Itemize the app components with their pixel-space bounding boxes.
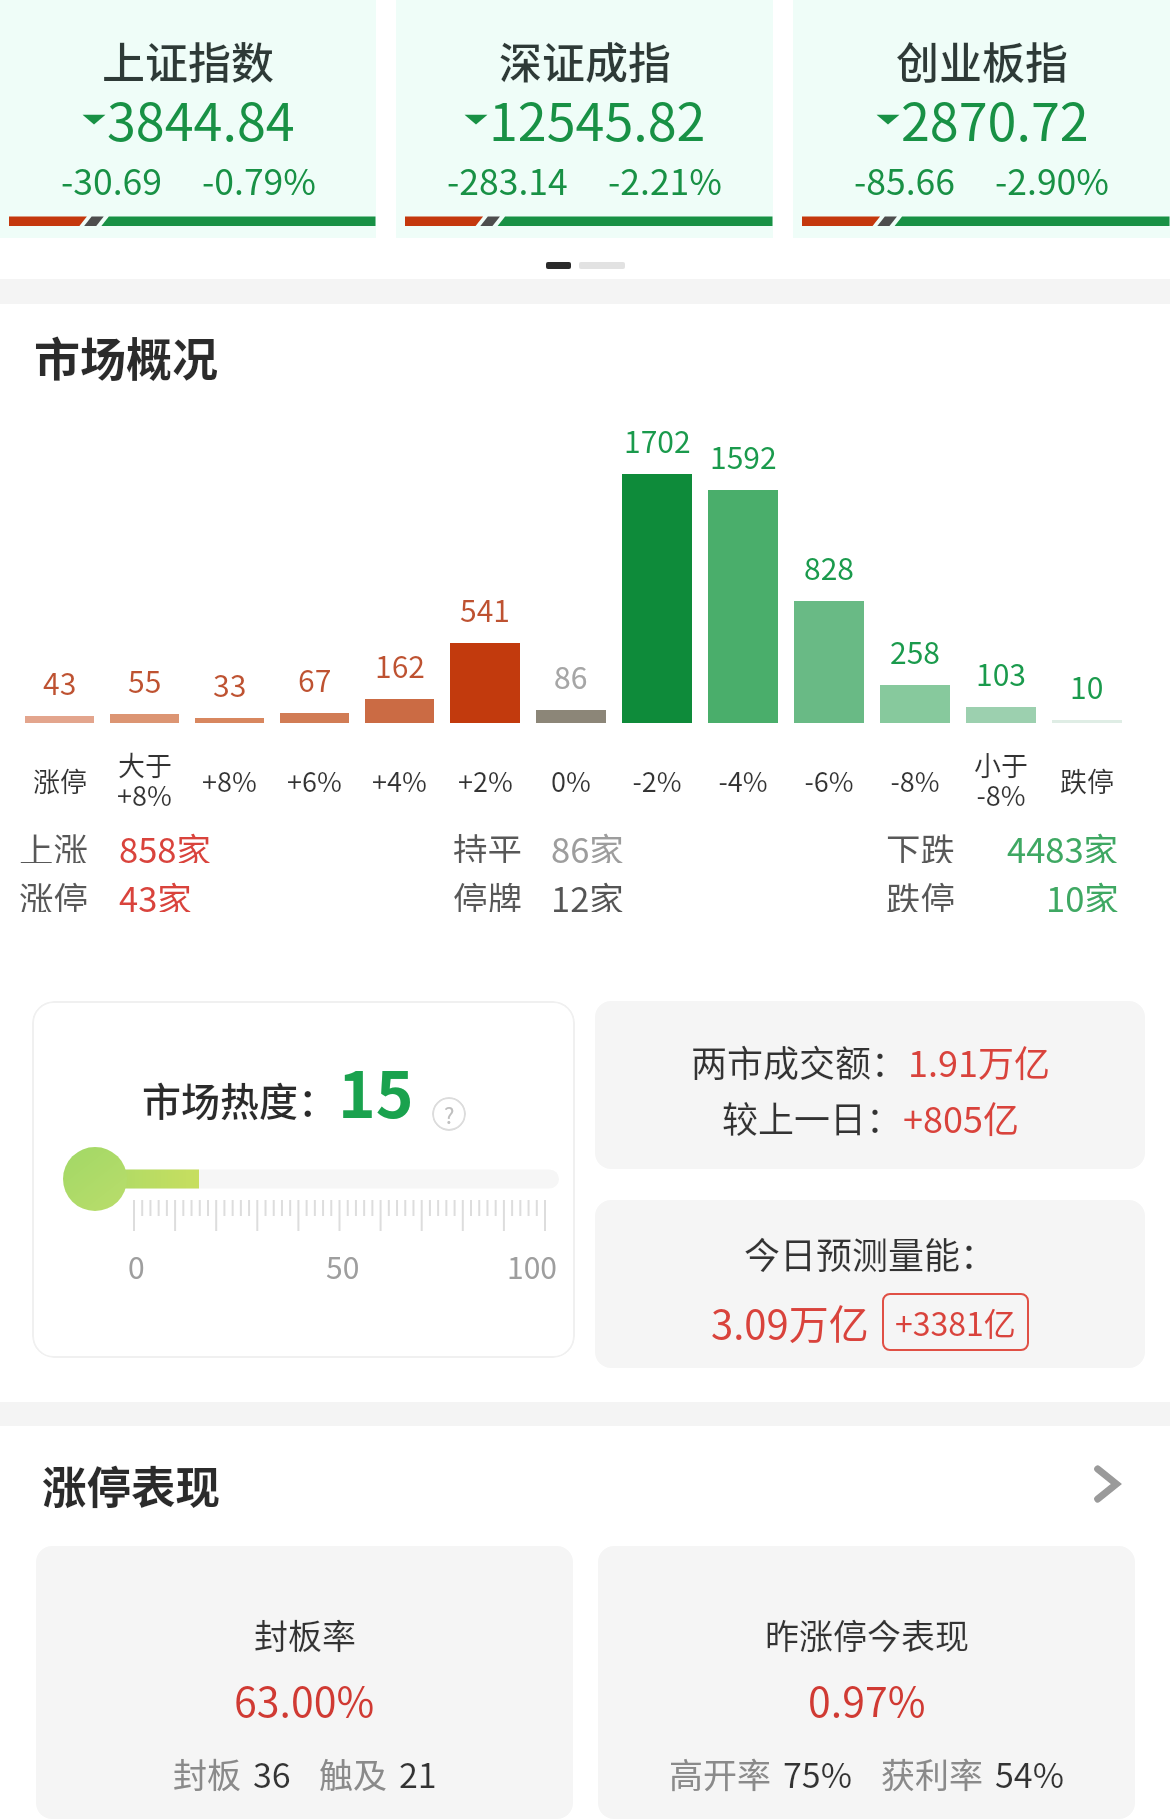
staticText: 258 bbox=[890, 629, 940, 672]
staticText: -8% bbox=[976, 775, 1026, 814]
button[interactable]: 创业板指 bbox=[793, 0, 1170, 238]
staticText: 停牌 bbox=[453, 872, 522, 912]
staticText: -2.90% bbox=[995, 154, 1109, 205]
staticText: 两市成交额： bbox=[691, 1035, 908, 1087]
staticText: -2.21% bbox=[608, 154, 722, 205]
staticText: 封板率 bbox=[254, 1610, 356, 1659]
staticText: 36 bbox=[253, 1749, 291, 1798]
staticText: 86 bbox=[554, 654, 588, 697]
staticText: 0.97% bbox=[808, 1669, 926, 1728]
staticText: +6% bbox=[287, 761, 342, 800]
staticText: +805亿 bbox=[903, 1091, 1019, 1143]
staticText: 33 bbox=[213, 662, 247, 705]
button[interactable]: 今日预测量能： bbox=[595, 1200, 1145, 1368]
staticText: 获利率 bbox=[881, 1749, 983, 1798]
staticText: 今日预测量能： bbox=[744, 1227, 997, 1279]
staticText: 深证成指 bbox=[499, 29, 671, 91]
staticText: 63.00% bbox=[234, 1669, 375, 1728]
staticText: 12545.82 bbox=[489, 81, 706, 156]
button[interactable]: 市场热度： bbox=[32, 1001, 575, 1358]
staticText: 较上一日： bbox=[722, 1091, 903, 1143]
staticText: 21 bbox=[399, 1749, 437, 1798]
staticText: 1592 bbox=[710, 434, 777, 477]
staticText: -6% bbox=[804, 761, 854, 800]
staticText: -85.66 bbox=[854, 154, 955, 205]
staticText: -30.69 bbox=[61, 154, 162, 205]
staticText: 86家 bbox=[551, 823, 624, 863]
staticText: -0.79% bbox=[202, 154, 316, 205]
staticText: 50 bbox=[326, 1244, 360, 1287]
button[interactable]: 涨停表现 bbox=[42, 1452, 1132, 1516]
staticText: -2% bbox=[632, 761, 682, 800]
button[interactable]: 上证指数 bbox=[0, 0, 376, 238]
staticText: 小于 bbox=[974, 745, 1028, 784]
staticText: 103 bbox=[976, 651, 1026, 694]
staticText: 67 bbox=[298, 657, 332, 700]
staticText: 上证指数 bbox=[102, 29, 274, 91]
staticText: 涨停 bbox=[33, 761, 87, 800]
staticText: 跌停 bbox=[886, 872, 955, 912]
staticText: 3.09万亿 bbox=[711, 1293, 869, 1351]
staticText: 3844.84 bbox=[107, 81, 295, 156]
staticText: 828 bbox=[804, 545, 854, 588]
staticText: 上涨 bbox=[19, 823, 88, 863]
staticText: 162 bbox=[375, 643, 425, 686]
staticText: 触及 bbox=[319, 1749, 387, 1798]
staticText: 涨停 bbox=[19, 872, 88, 912]
staticText: 1.91万亿 bbox=[908, 1035, 1050, 1087]
staticText: 涨停表现 bbox=[42, 1452, 221, 1516]
staticText: +8% bbox=[117, 775, 172, 814]
staticText: 10家 bbox=[1046, 872, 1119, 912]
button[interactable]: 封板率 bbox=[36, 1546, 573, 1819]
staticText: 100 bbox=[507, 1244, 557, 1287]
staticText: 0% bbox=[551, 761, 591, 800]
staticText: 创业板指 bbox=[896, 29, 1068, 91]
staticText: 2870.72 bbox=[901, 81, 1089, 156]
staticText: 4483家 bbox=[1007, 823, 1119, 863]
staticText: +3381亿 bbox=[895, 1299, 1016, 1345]
staticText: ? bbox=[444, 1098, 455, 1130]
staticText: 市场概况 bbox=[34, 323, 218, 390]
button[interactable]: 两市成交额： bbox=[595, 1001, 1145, 1169]
staticText: 10 bbox=[1070, 664, 1104, 707]
staticText: 54% bbox=[995, 1749, 1065, 1798]
staticText: 75% bbox=[783, 1749, 853, 1798]
staticText: 15 bbox=[338, 1044, 414, 1137]
staticText: 下跌 bbox=[886, 823, 955, 863]
staticText: -4% bbox=[718, 761, 768, 800]
staticText: 跌停 bbox=[1060, 761, 1114, 800]
other: 查看更多 bbox=[1080, 1458, 1132, 1510]
staticText: 541 bbox=[460, 587, 510, 630]
staticText: +2% bbox=[458, 761, 513, 800]
button[interactable]: 深证成指 bbox=[396, 0, 773, 238]
staticText: 858家 bbox=[119, 823, 211, 863]
staticText: 市场热度： bbox=[142, 1071, 338, 1127]
staticText: -8% bbox=[890, 761, 940, 800]
staticText: 43 bbox=[43, 660, 77, 703]
staticText: 大于 bbox=[118, 745, 172, 784]
staticText: 55 bbox=[128, 658, 162, 701]
staticText: 43家 bbox=[119, 872, 192, 912]
button[interactable]: 昨涨停今表现 bbox=[598, 1546, 1135, 1819]
staticText: -283.14 bbox=[447, 154, 568, 205]
staticText: 1702 bbox=[624, 418, 691, 461]
staticText: 0 bbox=[128, 1244, 145, 1287]
staticText: 昨涨停今表现 bbox=[765, 1610, 969, 1659]
staticText: 高开率 bbox=[669, 1749, 771, 1798]
staticText: 12家 bbox=[551, 872, 624, 912]
staticText: 封板 bbox=[173, 1749, 241, 1798]
staticText: +4% bbox=[372, 761, 427, 800]
staticText: 持平 bbox=[453, 823, 522, 863]
staticText: +8% bbox=[202, 761, 257, 800]
